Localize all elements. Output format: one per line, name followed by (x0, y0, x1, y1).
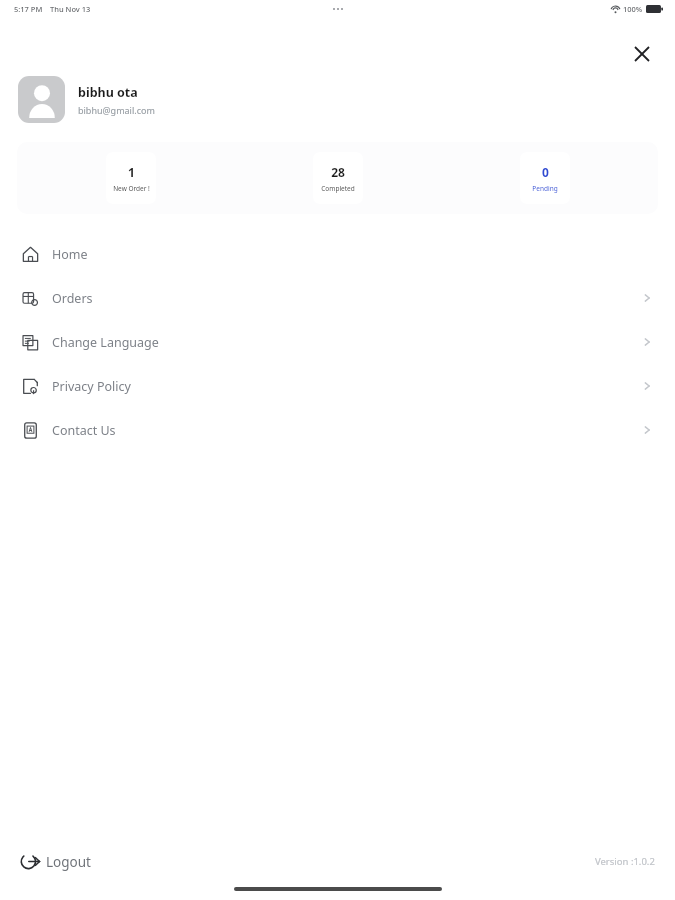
staticText: bibhu ota (78, 84, 138, 101)
staticText: 5:17 PM (14, 4, 43, 14)
button[interactable]: 1 (106, 152, 156, 204)
staticText: Completed (321, 184, 355, 193)
button[interactable]: Change Language (0, 320, 675, 364)
staticText: Pending (532, 184, 558, 193)
button[interactable]: bibhu ota (18, 76, 657, 123)
button[interactable]: 0 (520, 152, 570, 204)
staticText: Logout (46, 853, 91, 871)
staticText: Home (52, 246, 88, 263)
staticText: Orders (52, 290, 93, 307)
button[interactable]: 28 (313, 152, 363, 204)
button[interactable]: Logout (16, 847, 95, 876)
button[interactable]: Contact Us (0, 408, 675, 452)
button[interactable]: Home (0, 232, 675, 276)
staticText: 28 (331, 164, 345, 180)
staticText: bibhu@gmail.com (78, 104, 155, 116)
staticText: 0 (542, 164, 549, 180)
staticText: Contact Us (52, 422, 116, 439)
button[interactable]: Orders (0, 276, 675, 320)
staticText: Privacy Policy (52, 378, 131, 395)
staticText: Thu Nov 13 (50, 4, 91, 14)
staticText: New Order ! (113, 184, 150, 193)
staticText: 100% (623, 4, 643, 14)
staticText: Change Language (52, 334, 159, 351)
button[interactable]: Close (627, 39, 657, 69)
staticText: Version :1.0.2 (595, 855, 655, 868)
button[interactable]: Privacy Policy (0, 364, 675, 408)
staticText: 1 (128, 164, 135, 180)
